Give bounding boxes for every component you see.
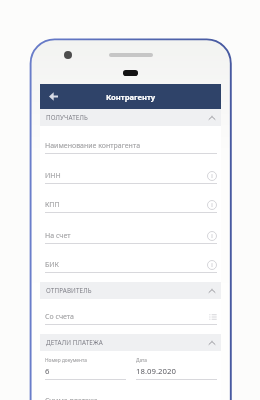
button[interactable]: Дата <box>136 351 217 380</box>
button[interactable]: ПОЛУЧАТЕЛЬ <box>40 109 221 126</box>
staticText: ОТПРАВИТЕЛЬ <box>46 286 92 295</box>
button[interactable]: Back <box>45 88 62 105</box>
staticText: КПП <box>45 200 60 210</box>
staticText: Контрагенту <box>106 92 156 102</box>
staticText: На счет <box>45 231 71 241</box>
staticText: 18.09.2020 <box>136 366 176 377</box>
button[interactable]: БИК <box>40 244 221 273</box>
button[interactable]: Со счета <box>40 299 221 325</box>
staticText: ИНН <box>45 171 61 181</box>
staticText: ПОЛУЧАТЕЛЬ <box>46 113 88 122</box>
staticText: ДЕТАЛИ ПЛАТЕЖА <box>46 338 103 347</box>
staticText: Наименование контрагента <box>45 141 141 151</box>
button[interactable]: Наименование контрагента <box>40 126 221 154</box>
button[interactable]: ДЕТАЛИ ПЛАТЕЖА <box>40 334 221 351</box>
staticText: Дата <box>136 357 148 364</box>
staticText: Сумма платежа <box>45 396 98 400</box>
button[interactable]: Номер документа <box>45 351 126 380</box>
button[interactable]: ОТПРАВИТЕЛЬ <box>40 282 221 299</box>
button[interactable]: КПП <box>40 184 221 213</box>
staticText: Со счета <box>45 312 74 322</box>
staticText: 6 <box>45 366 50 377</box>
staticText: БИК <box>45 260 59 270</box>
button[interactable]: Сумма платежа <box>40 380 221 400</box>
staticText: Номер документа <box>45 357 87 364</box>
button[interactable]: ИНН <box>40 154 221 184</box>
button[interactable]: На счет <box>40 213 221 244</box>
